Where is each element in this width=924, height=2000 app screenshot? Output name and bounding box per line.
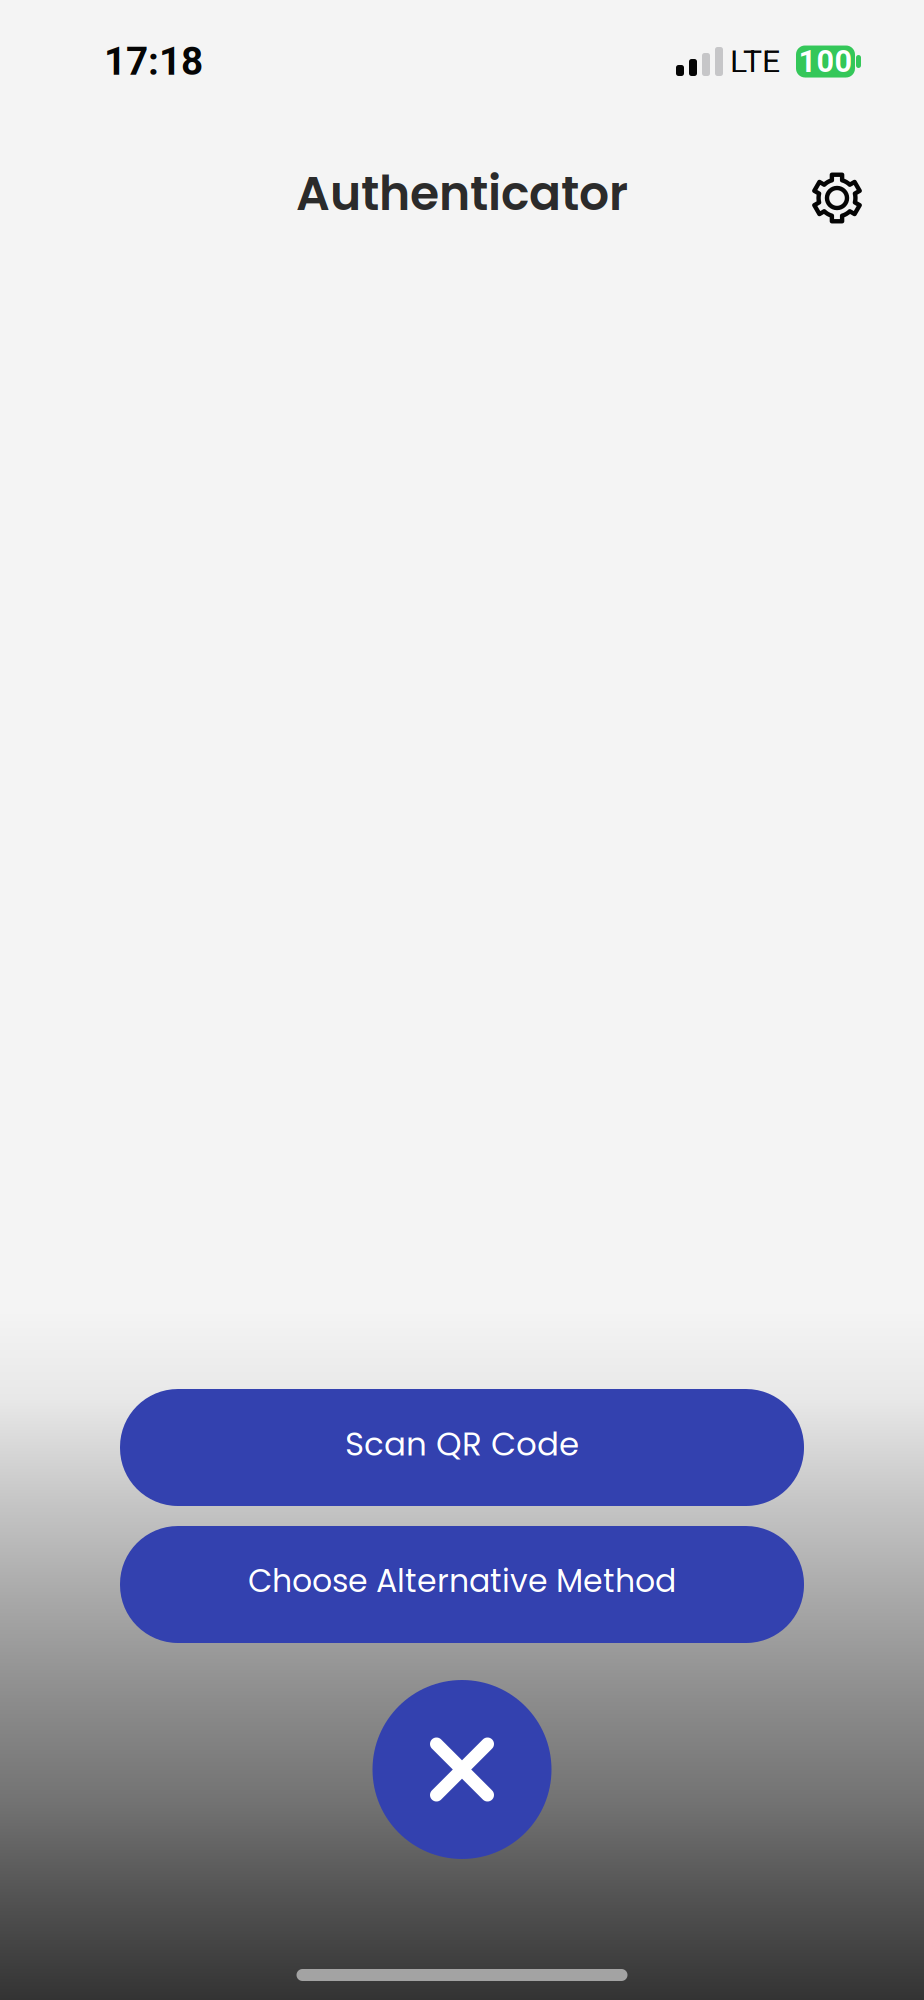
staticText: LTE	[730, 43, 780, 80]
button[interactable]: Settings	[793, 154, 881, 242]
button[interactable]: Close	[372, 1680, 551, 1859]
staticText: 17:18	[104, 39, 203, 84]
staticText: Authenticator	[296, 160, 628, 227]
staticText: 100	[798, 43, 852, 79]
staticText: Scan QR Code	[345, 1421, 579, 1467]
staticText: Choose Alternative Method	[248, 1559, 676, 1603]
button[interactable]: Choose Alternative Method	[120, 1526, 804, 1643]
button[interactable]: Scan QR Code	[120, 1389, 804, 1506]
